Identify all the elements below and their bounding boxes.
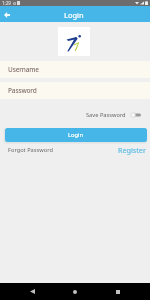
staticText: 1:29 [2, 0, 11, 6]
button[interactable]: Forgot Password [8, 146, 53, 154]
button[interactable]: Recent apps [108, 283, 128, 300]
staticText: Login [64, 10, 84, 20]
button[interactable]: Save Password toggle [129, 111, 141, 119]
staticText: Login [68, 131, 84, 139]
staticText: Username [8, 65, 39, 74]
button[interactable]: Back [22, 283, 42, 300]
staticText: Save Password [86, 111, 126, 119]
staticText: Password [8, 86, 37, 95]
button[interactable]: Login [5, 128, 147, 142]
button[interactable]: Register [118, 145, 146, 155]
button[interactable]: Home [65, 283, 85, 300]
button[interactable]: Back [1, 9, 12, 20]
staticText: Forgot Password [8, 146, 53, 154]
staticText: Register [118, 145, 146, 155]
